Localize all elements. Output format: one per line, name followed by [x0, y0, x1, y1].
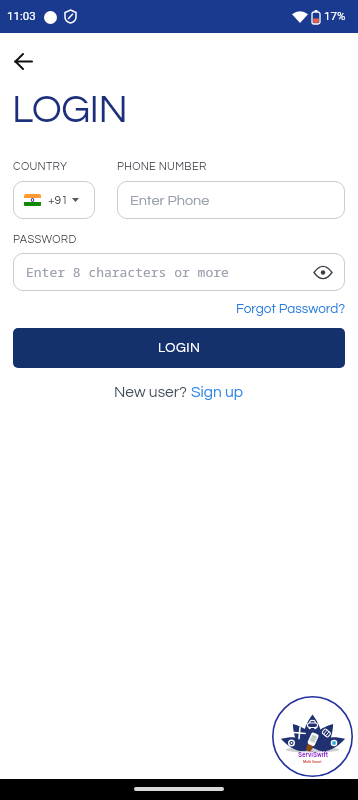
button[interactable]: Sign up	[191, 384, 244, 400]
staticText: Sign up	[191, 384, 244, 400]
staticText: +91	[48, 194, 68, 206]
staticText: Enter Phone	[130, 193, 210, 208]
staticText: 11:03	[7, 9, 36, 22]
staticText: ServiSwift	[298, 751, 328, 759]
button[interactable]: +91	[13, 181, 95, 219]
button[interactable]: LOGIN	[13, 328, 345, 368]
staticText: PASSWORD	[13, 234, 77, 245]
button[interactable]: Enter Phone	[117, 181, 345, 219]
button[interactable]: Forgot Password?	[230, 299, 346, 319]
staticText: Multi Smart	[303, 760, 322, 764]
staticText: PHONE NUMBER	[117, 161, 207, 172]
staticText: LOGIN	[12, 89, 128, 130]
staticText: Enter 8 characters or more	[26, 263, 229, 281]
button[interactable]: Enter 8 characters or more	[13, 253, 345, 291]
staticText: LOGIN	[158, 341, 201, 355]
staticText: New user?	[114, 384, 191, 400]
staticText: Forgot Password?	[236, 302, 346, 316]
button[interactable]	[314, 267, 332, 278]
button[interactable]	[6, 44, 40, 78]
staticText: COUNTRY	[13, 161, 68, 172]
staticText: 17%	[324, 9, 346, 22]
